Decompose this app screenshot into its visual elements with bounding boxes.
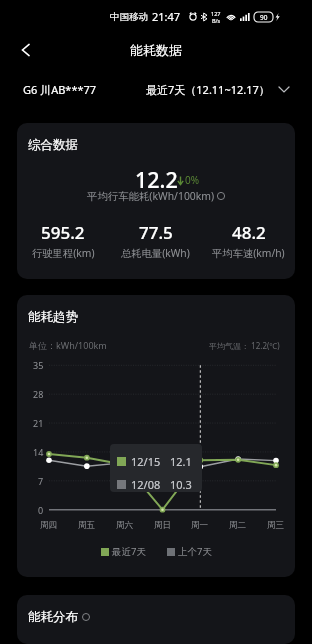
staticText: 周日 [154,520,172,531]
staticText: 上个7天 [178,545,212,558]
staticText: 595.2 [41,221,85,244]
staticText: 平均车速(km/h) [212,246,285,260]
staticText: 平均行车能耗(kWh/100km) [87,189,215,203]
staticText: 能耗分布 [28,609,78,625]
staticText: 28 [33,388,44,400]
staticText: 周五 [78,520,96,531]
staticText: 10.3 [170,477,192,492]
staticText: 77.5 [139,221,173,244]
staticText: 21 [33,417,44,429]
staticText: 周一 [191,520,209,531]
staticText: 12/08 [131,477,161,492]
staticText: 35 [33,359,44,371]
staticText: 能耗趋势 [28,309,78,325]
staticText: 最近7天（12.11~12.17） [146,82,270,97]
staticText: B/s [212,17,221,24]
staticText: 单位：kWh/100km [29,339,107,351]
staticText: 12.1 [170,454,192,469]
staticText: 0 [38,504,44,516]
staticText: 综合数据 [28,137,78,153]
staticText: 行驶里程(km) [32,246,95,260]
staticText: 周四 [40,520,58,531]
staticText: 14 [33,446,44,458]
staticText: 48.2 [232,221,266,244]
staticText: 12.2 [135,165,178,194]
staticText: 平均气温： 12.2(℃) [209,340,280,351]
button[interactable]: G6 川AB***77 [17,76,103,103]
staticText: 21:47 [152,9,181,24]
staticText: 0% [185,173,200,187]
staticText: 周六 [116,520,134,531]
staticText: 中国移动 [110,11,148,23]
staticText: 周三 [267,520,285,531]
staticText: G6 川AB***77 [23,82,97,97]
staticText: 周二 [229,520,247,531]
button[interactable]: 最近7天（12.11~12.17） [140,76,295,103]
staticText: 总耗电量(kWh) [121,246,190,260]
staticText: 最近7天 [112,545,146,558]
staticText: 7 [38,475,44,487]
button[interactable]: Back [12,36,40,64]
staticText: 127 [211,10,221,17]
staticText: 90 [260,13,268,22]
staticText: 12/15 [131,454,161,469]
staticText: 能耗数据 [130,42,182,58]
